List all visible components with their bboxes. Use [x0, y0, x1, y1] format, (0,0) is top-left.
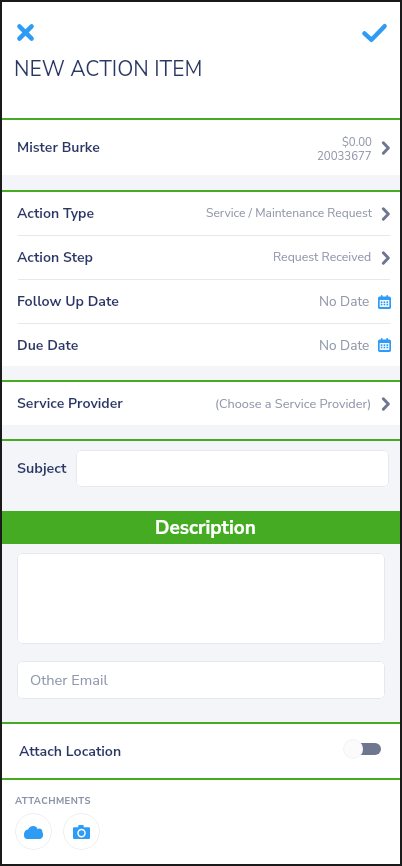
- button[interactable]: Service Provider: [2, 382, 400, 425]
- button[interactable]: Take photo: [63, 813, 100, 850]
- staticText: No Date: [319, 336, 370, 355]
- staticText: Service Provider: [17, 394, 123, 413]
- button[interactable]: Other Email: [17, 661, 385, 699]
- staticText: Follow Up Date: [17, 292, 119, 311]
- button[interactable]: Action Type: [2, 192, 400, 236]
- button[interactable]: Close: [9, 16, 41, 48]
- staticText: NEW ACTION ITEM: [14, 55, 203, 84]
- staticText: Mister Burke: [17, 138, 100, 157]
- button[interactable]: [17, 553, 385, 644]
- button[interactable]: Mister Burke: [2, 120, 400, 175]
- button[interactable]: [76, 450, 389, 487]
- button[interactable]: Save: [357, 16, 391, 50]
- staticText: $0.00: [342, 134, 372, 150]
- staticText: ATTACHMENTS: [15, 794, 91, 807]
- staticText: 20033677: [317, 148, 372, 164]
- staticText: Subject: [17, 459, 67, 479]
- staticText: Description: [155, 515, 256, 541]
- staticText: Due Date: [17, 336, 79, 355]
- button[interactable]: Follow Up Date: [2, 280, 400, 324]
- button[interactable]: Due Date: [2, 324, 400, 366]
- staticText: No Date: [319, 292, 370, 311]
- staticText: Attach Location: [19, 742, 122, 761]
- staticText: Action Step: [17, 248, 94, 267]
- button[interactable]: Action Step: [2, 236, 400, 280]
- staticText: Service / Maintenance Request: [206, 205, 372, 222]
- button[interactable]: Attach Location: [2, 724, 400, 778]
- button[interactable]: Attach from cloud: [15, 813, 52, 850]
- staticText: (Choose a Service Provider): [215, 395, 372, 412]
- staticText: Other Email: [30, 670, 108, 690]
- staticText: Request Received: [273, 249, 372, 266]
- staticText: Action Type: [17, 204, 95, 223]
